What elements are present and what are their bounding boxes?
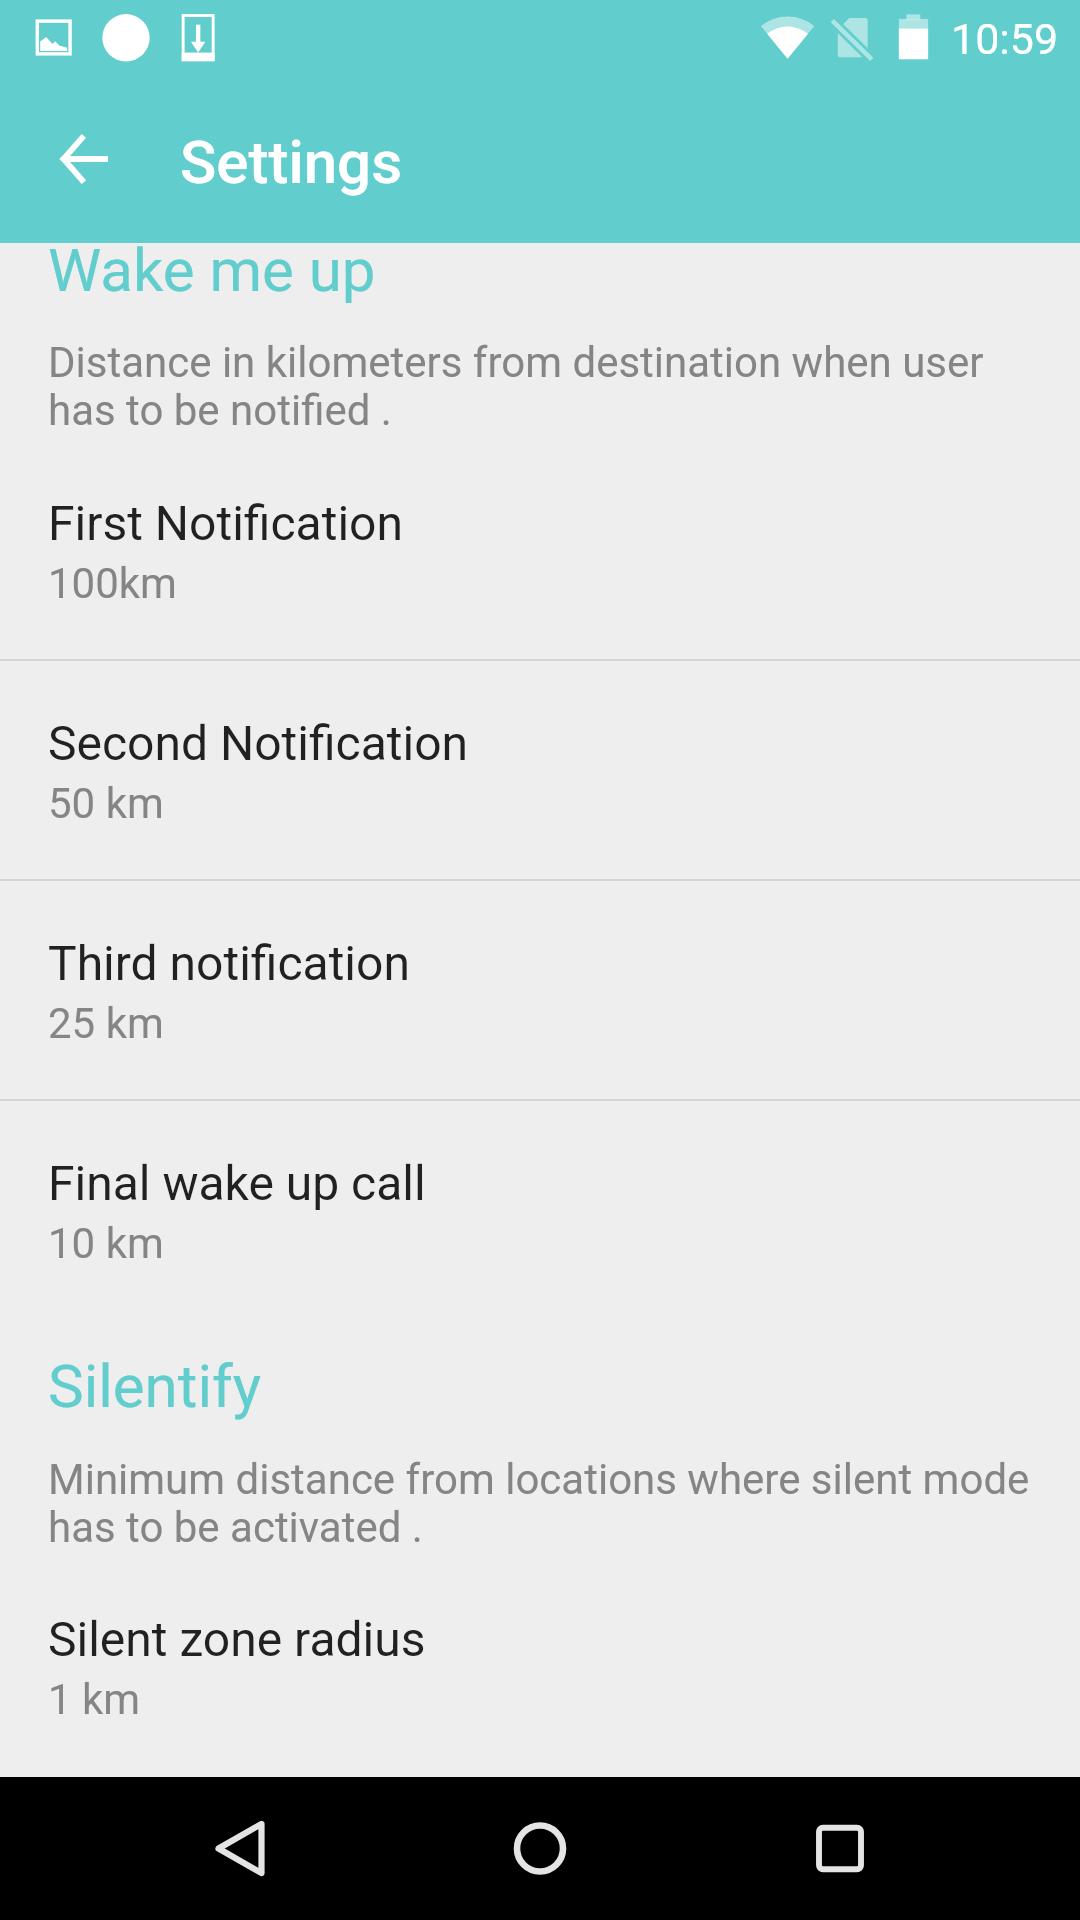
button[interactable]: Final wake up call [0, 1100, 1080, 1320]
staticText: Settings [180, 127, 403, 197]
button[interactable]: Home [480, 1777, 600, 1920]
button[interactable]: Third notification [0, 880, 1080, 1100]
staticText: Silent zone radius [48, 1611, 426, 1667]
staticText: First Notification [48, 495, 403, 551]
staticText: 50 km [48, 779, 164, 828]
staticText: 1 km [48, 1675, 141, 1724]
staticText: Third notification [48, 935, 410, 991]
staticText: 100km [48, 559, 177, 608]
staticText: Minimum distance from locations where si… [48, 1456, 1038, 1552]
staticText: Wake me up [48, 235, 376, 305]
staticText: Final wake up call [48, 1155, 426, 1211]
button[interactable]: First Notification [0, 440, 1080, 660]
button[interactable]: Navigate up [36, 111, 132, 207]
staticText: 10:59 [951, 14, 1059, 64]
button[interactable]: Back [180, 1777, 300, 1920]
button[interactable]: Recent apps [780, 1777, 900, 1920]
staticText: 25 km [48, 999, 164, 1048]
staticText: Distance in kilometers from destination … [48, 339, 1008, 435]
staticText: Second Notification [48, 715, 469, 771]
staticText: Silentify [48, 1351, 262, 1421]
staticText: 10 km [48, 1219, 164, 1268]
button[interactable]: Silent zone radius [0, 1556, 1080, 1776]
button[interactable]: Second Notification [0, 660, 1080, 880]
